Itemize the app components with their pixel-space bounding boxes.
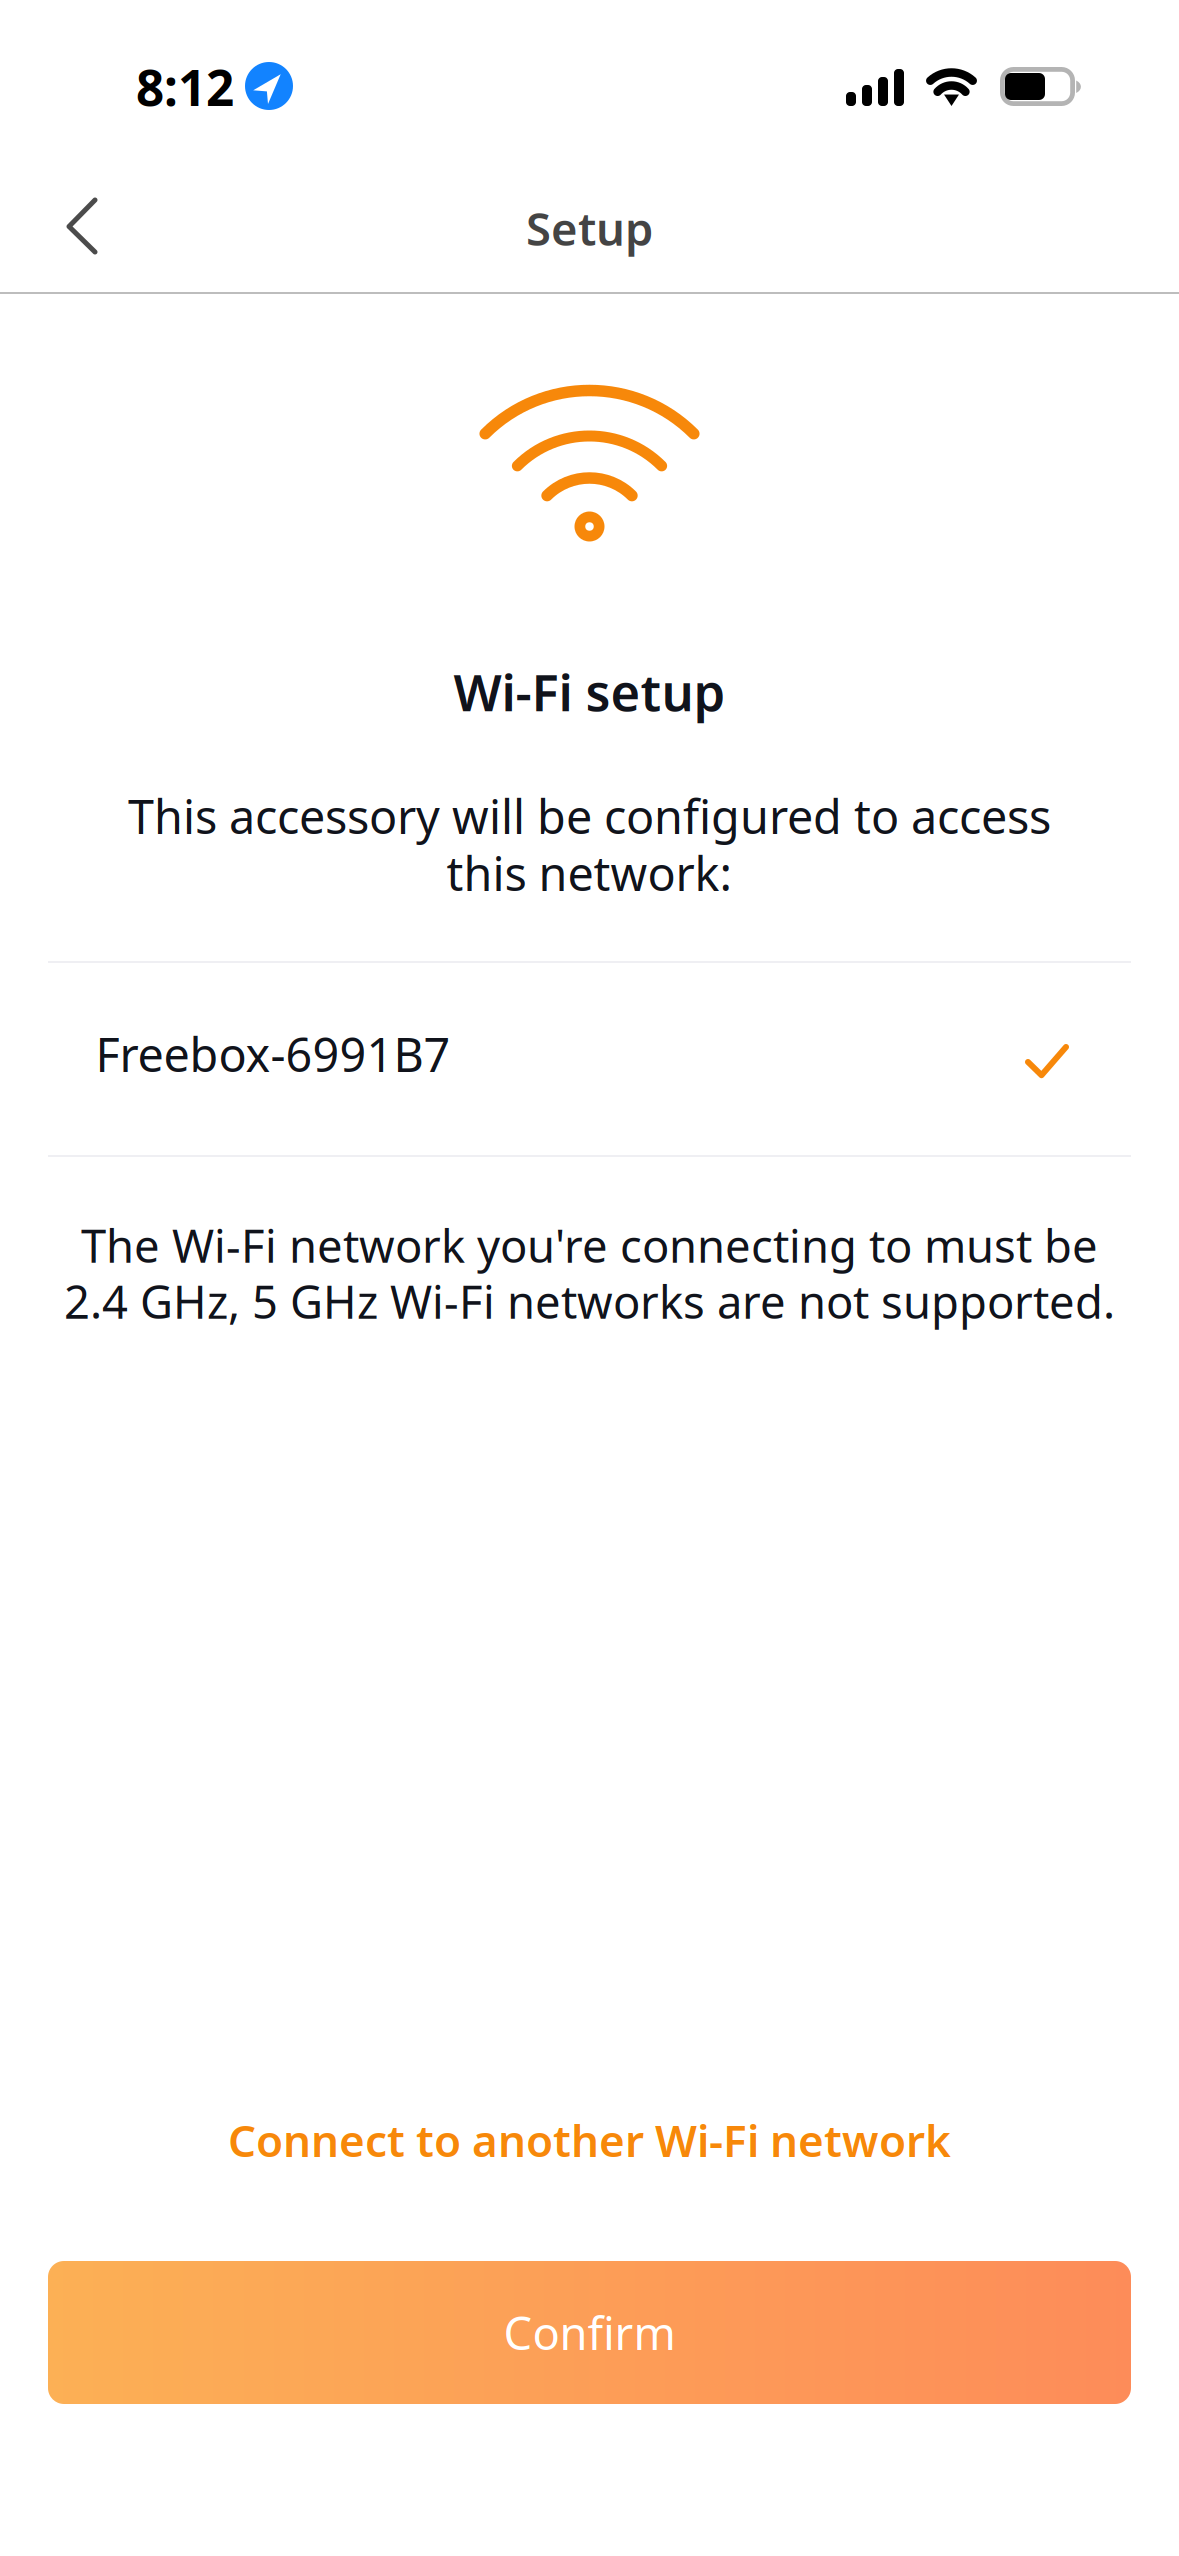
staticText: The Wi-Fi network you're connecting to m… — [81, 1215, 1098, 1275]
staticText: Freebox-6991B7 — [95, 1023, 450, 1085]
button[interactable]: Back — [0, 160, 155, 292]
staticText: Wi-Fi setup — [453, 658, 725, 725]
staticText: 8:12 — [136, 54, 234, 119]
staticText: This accessory will be configured to acc… — [128, 785, 1051, 847]
button[interactable]: Freebox-6991B7 — [48, 963, 1131, 1156]
button[interactable]: Confirm — [48, 2261, 1131, 2404]
staticText: Connect to another Wi-Fi network — [228, 2111, 951, 2169]
staticText: this network: — [446, 842, 732, 904]
staticText: 2.4 GHz, 5 GHz Wi-Fi networks are not su… — [64, 1271, 1115, 1331]
button[interactable]: Connect to another Wi-Fi network — [0, 2090, 1179, 2190]
staticText: Confirm — [503, 2302, 675, 2363]
staticText: Setup — [526, 198, 653, 258]
